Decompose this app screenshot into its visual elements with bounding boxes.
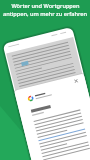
staticText: Wörter und Wortgruppen bbox=[11, 2, 80, 10]
staticText: antippen, um mehr zu erfahren bbox=[3, 10, 87, 18]
